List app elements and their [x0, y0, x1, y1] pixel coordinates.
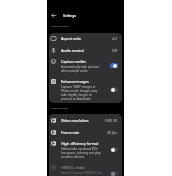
button[interactable] — [110, 171, 118, 176]
staticText: Off — [112, 48, 118, 53]
staticText: FHD 30 — [105, 118, 118, 123]
staticText: 30 fps — [107, 130, 118, 135]
staticText: PHOTO SETTINGS — [51, 25, 70, 28]
button[interactable]: Audio control — [49, 44, 122, 56]
staticText: Frame rate — [61, 130, 80, 135]
staticText: Record videos in HDR10+ for more vivid c… — [61, 171, 102, 176]
button[interactable] — [110, 147, 118, 152]
button[interactable] — [110, 63, 118, 68]
button[interactable]: 50 — [49, 75, 122, 103]
button[interactable]: Video resolution — [49, 114, 122, 126]
staticText: High efficiency format — [61, 141, 99, 146]
staticText: Videos take up about 35% less space, but… — [61, 147, 102, 159]
staticText: 50 — [52, 80, 56, 84]
button[interactable]: HDR10+ video — [49, 160, 122, 176]
staticText: 4:3 — [112, 36, 118, 41]
button[interactable]: Back — [47, 8, 60, 22]
staticText: Video resolution — [61, 118, 89, 123]
staticText: Enhance images — [61, 79, 89, 84]
staticText: Settings — [63, 13, 76, 17]
staticText: VIDEO SETTINGS — [51, 107, 69, 110]
staticText: Capture 50MP images in Photo mode. Image… — [61, 85, 102, 101]
button[interactable]: Aspect ratio — [49, 33, 122, 44]
button[interactable]: Capture smiles — [49, 56, 122, 75]
staticText: Capture smiles — [61, 59, 87, 64]
staticText: Automatically take pictures when people … — [61, 65, 102, 73]
staticText: Aspect ratio — [61, 36, 82, 41]
staticText: Audio control — [61, 48, 84, 53]
button[interactable]: Frame rate — [49, 126, 122, 138]
button[interactable]: High efficiency format — [49, 138, 122, 160]
button[interactable] — [110, 87, 118, 92]
staticText: HDR10+ video — [61, 165, 85, 170]
